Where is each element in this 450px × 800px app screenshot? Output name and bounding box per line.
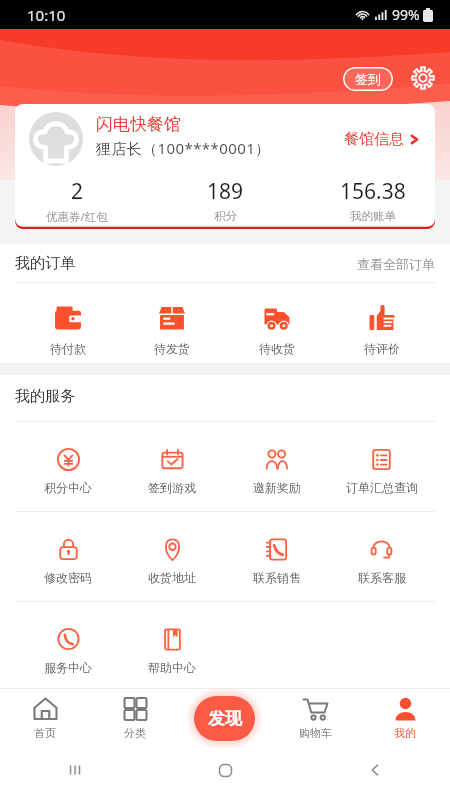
- staticText: 邀新奖励: [253, 480, 301, 495]
- staticText: 订单汇总查询: [346, 480, 418, 495]
- staticText: 狸店长（100****0001）: [96, 138, 271, 158]
- button[interactable]: 156.38: [299, 174, 447, 229]
- staticText: 服务中心: [44, 660, 92, 675]
- staticText: 签到: [355, 71, 381, 87]
- staticText: 待发货: [154, 341, 190, 356]
- staticText: 联系客服: [358, 570, 406, 585]
- button[interactable]: Back: [300, 747, 450, 793]
- button[interactable]: 查看全部订单: [357, 256, 435, 272]
- button[interactable]: 我的: [360, 688, 450, 747]
- staticText: 待付款: [50, 341, 86, 356]
- staticText: 收货地址: [148, 570, 196, 585]
- staticText: 我的账单: [350, 209, 396, 223]
- staticText: 购物车: [299, 726, 332, 740]
- staticText: 联系销售: [253, 570, 301, 585]
- button[interactable]: 待评价: [329, 283, 434, 363]
- staticText: 签到游戏: [148, 480, 196, 495]
- staticText: 2: [71, 177, 84, 206]
- button[interactable]: 2: [3, 174, 151, 229]
- button[interactable]: 购物车: [270, 688, 360, 747]
- button[interactable]: 订单汇总查询: [329, 422, 434, 511]
- button[interactable]: 服务中心: [16, 602, 120, 688]
- button[interactable]: 帮助中心: [120, 602, 224, 688]
- button[interactable]: 待付款: [16, 283, 120, 363]
- staticText: 餐馆信息: [344, 130, 404, 149]
- staticText: 我的服务: [15, 387, 75, 406]
- staticText: 闪电快餐馆: [96, 114, 181, 135]
- button[interactable]: 收货地址: [120, 512, 224, 601]
- button[interactable]: 修改密码: [16, 512, 120, 601]
- staticText: 优惠券/红包: [46, 209, 108, 225]
- staticText: 156.38: [340, 177, 406, 206]
- button[interactable]: 待发货: [120, 283, 224, 363]
- button[interactable]: 积分中心: [16, 422, 120, 511]
- staticText: 分类: [124, 726, 146, 740]
- button[interactable]: 联系客服: [329, 512, 434, 601]
- button[interactable]: Home: [150, 747, 300, 793]
- button[interactable]: 分类: [90, 688, 180, 747]
- button[interactable]: 待收货: [224, 283, 329, 363]
- staticText: 189: [207, 177, 244, 206]
- staticText: 10:10: [27, 5, 66, 25]
- staticText: 首页: [34, 726, 56, 740]
- staticText: 修改密码: [44, 570, 92, 585]
- staticText: 待评价: [364, 341, 400, 356]
- button[interactable]: 签到游戏: [120, 422, 224, 511]
- button[interactable]: 签到: [343, 67, 393, 91]
- staticText: 发现: [208, 708, 242, 729]
- button[interactable]: Recents: [0, 747, 150, 793]
- staticText: 我的订单: [15, 254, 75, 273]
- button[interactable]: 联系销售: [224, 512, 329, 601]
- staticText: 99%: [392, 5, 420, 24]
- button[interactable]: 邀新奖励: [224, 422, 329, 511]
- button[interactable]: 餐馆信息: [344, 130, 421, 149]
- staticText: 我的: [394, 726, 416, 740]
- staticText: 积分中心: [44, 480, 92, 495]
- staticText: 待收货: [259, 341, 295, 356]
- staticText: 帮助中心: [148, 660, 196, 675]
- button[interactable]: 189: [151, 174, 299, 229]
- staticText: 积分: [214, 209, 237, 223]
- button[interactable]: Settings: [409, 64, 437, 92]
- button[interactable]: 首页: [0, 688, 90, 747]
- button[interactable]: 发现: [194, 696, 255, 741]
